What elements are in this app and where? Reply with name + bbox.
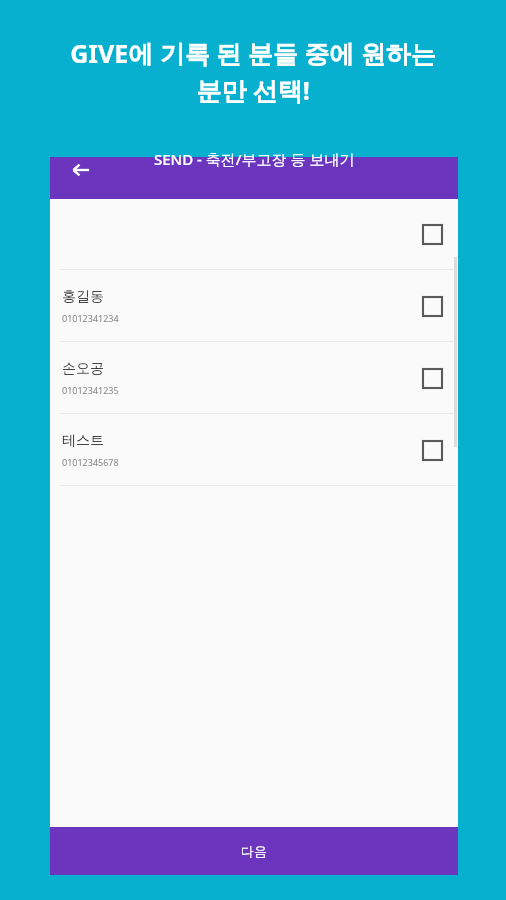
button[interactable]: Select contact — [418, 364, 446, 392]
button[interactable]: Select contact — [418, 436, 446, 464]
button[interactable]: 다음 — [50, 827, 458, 875]
staticText: 다음 — [241, 843, 267, 859]
staticText: 테스트 — [62, 432, 104, 450]
button[interactable]: Back — [66, 155, 96, 185]
staticText: 손오공 — [62, 360, 104, 378]
button[interactable]: Select contact — [50, 199, 458, 269]
staticText: 홍길동 — [62, 288, 104, 306]
button[interactable]: Select contact — [418, 292, 446, 320]
button[interactable]: 홍길동 — [50, 270, 458, 341]
button[interactable]: 손오공 — [50, 342, 458, 413]
staticText: 01012345678 — [62, 456, 119, 468]
staticText: SEND - 축전/부고장 등 보내기 — [154, 149, 355, 169]
button[interactable]: Select contact — [418, 220, 446, 248]
staticText: 01012341234 — [62, 312, 119, 324]
button[interactable]: 테스트 — [50, 414, 458, 485]
staticText: 01012341235 — [62, 384, 119, 396]
staticText: GIVE에 기록 된 분들 중에 원하는 분만 선택! — [18, 36, 488, 108]
